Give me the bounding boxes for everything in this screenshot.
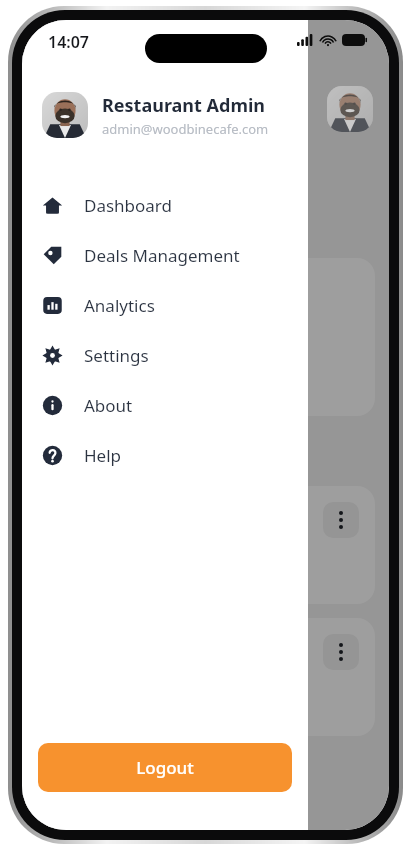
button[interactable]: Restaurant Admin [22, 92, 308, 138]
staticText: Analytics [84, 294, 155, 317]
staticText: admin@woodbinecafe.com [102, 120, 269, 138]
button[interactable]: More options [323, 502, 359, 538]
button[interactable]: Deals Management [22, 230, 308, 280]
button[interactable]: About [22, 380, 308, 430]
staticText: Settings [84, 344, 149, 367]
staticText: Deals Management [84, 244, 240, 267]
button[interactable]: Help [22, 430, 308, 480]
button[interactable]: Settings [22, 330, 308, 380]
button[interactable]: More options [323, 634, 359, 670]
button[interactable]: Logout [38, 743, 292, 792]
staticText: Help [84, 444, 122, 467]
staticText: Dashboard [84, 194, 173, 217]
staticText: About [84, 394, 133, 417]
staticText: 14:07 [48, 31, 90, 53]
staticText: Logout [136, 756, 194, 779]
button[interactable]: Dashboard [22, 180, 308, 230]
button[interactable]: Analytics [22, 280, 308, 330]
staticText: Restaurant Admin [102, 93, 266, 118]
